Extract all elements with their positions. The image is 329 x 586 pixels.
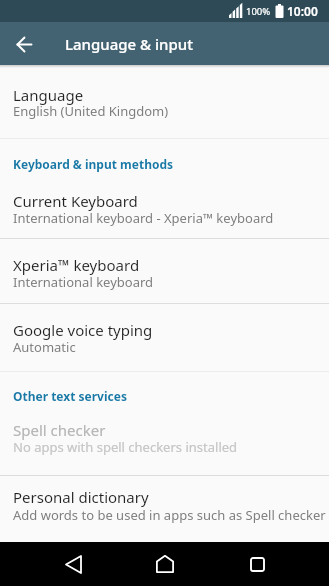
staticText: Google voice typing [13, 320, 153, 340]
button[interactable]: Current Keyboard [0, 186, 329, 238]
staticText: Xperia™ keyboard [13, 255, 140, 275]
button[interactable]: Spell checker [0, 410, 329, 475]
button[interactable]: Xperia™ keyboard [0, 239, 329, 303]
button[interactable] [6, 26, 42, 62]
staticText: No apps with spell checkers installed [13, 438, 238, 456]
button[interactable] [233, 542, 281, 586]
button[interactable] [49, 542, 97, 586]
button[interactable] [141, 542, 189, 586]
staticText: Keyboard & input methods [13, 156, 174, 172]
staticText: 100% [246, 5, 271, 18]
staticText: International keyboard [13, 273, 154, 291]
staticText: Personal dictionary [13, 487, 149, 507]
button[interactable]: Language [0, 78, 329, 138]
staticText: Language & input [65, 34, 193, 54]
staticText: Current Keyboard [13, 191, 138, 211]
staticText: Other text services [13, 388, 127, 404]
staticText: Language [13, 85, 84, 105]
staticText: 10:00 [287, 3, 318, 19]
button[interactable]: Personal dictionary [0, 476, 329, 542]
button[interactable]: Google voice typing [0, 304, 329, 371]
staticText: English (United Kingdom) [13, 102, 169, 120]
staticText: Automatic [13, 338, 76, 356]
staticText: Add words to be used in apps such as Spe… [13, 506, 326, 524]
staticText: International keyboard - Xperia™ keyboar… [13, 209, 274, 227]
staticText: Spell checker [13, 420, 106, 440]
